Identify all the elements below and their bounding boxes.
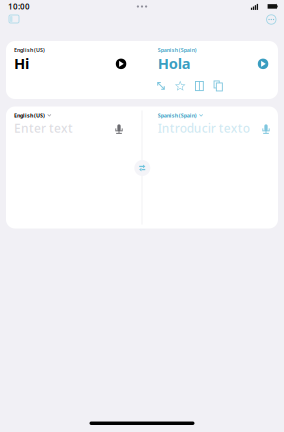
button[interactable]: Dictionary xyxy=(190,79,209,92)
staticText: English (US) xyxy=(14,46,45,54)
button[interactable]: Save translation xyxy=(171,79,190,92)
staticText: Hi xyxy=(14,54,29,73)
staticText: Spanish (Spain) xyxy=(158,112,197,119)
button[interactable]: More options xyxy=(259,11,284,31)
button[interactable]: Show sidebar xyxy=(0,12,26,30)
button[interactable]: Listen in English xyxy=(112,55,130,73)
button[interactable]: Speak in English xyxy=(109,119,128,139)
staticText: Spanish (Spain) xyxy=(158,46,197,54)
staticText: 10:00 xyxy=(8,1,30,12)
button[interactable]: Expand translation xyxy=(151,79,171,92)
button[interactable]: Copy translation xyxy=(209,79,228,92)
button[interactable]: Swap languages xyxy=(134,160,150,176)
staticText: Hola xyxy=(158,54,191,73)
button[interactable]: Speak in Spanish xyxy=(256,119,275,139)
button[interactable]: Listen in Spanish xyxy=(254,55,272,73)
staticText: Enter text xyxy=(14,120,73,136)
staticText: Introducir texto xyxy=(158,120,250,136)
staticText: English (US) xyxy=(14,112,45,119)
